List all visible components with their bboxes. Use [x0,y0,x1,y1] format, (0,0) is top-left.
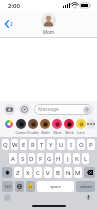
staticText: H [56,155,61,163]
button[interactable]: K [73,153,80,164]
button[interactable]: Photos [2,119,15,130]
staticText: K [75,155,79,163]
staticText: B [56,169,60,177]
staticText: E [22,141,26,149]
button[interactable]: Lore [75,119,87,135]
staticText: I [70,141,73,149]
staticText: Math [41,130,50,135]
staticText: U [59,141,64,149]
staticText: M [75,169,81,177]
button[interactable]: T [38,139,45,150]
button[interactable]: H [55,153,62,164]
staticText: D [29,155,34,163]
button[interactable]: 123 [2,181,13,192]
button[interactable]: Back [2,16,16,32]
button[interactable]: Switch keyboard [15,181,24,192]
button[interactable]: U [57,139,65,150]
staticText: W [12,141,18,149]
button[interactable]: E [20,139,27,150]
button[interactable]: Dictation [85,194,92,201]
button[interactable]: Send audio [83,106,91,114]
button[interactable]: X [24,167,32,178]
button[interactable]: F [37,153,44,164]
button[interactable]: return [76,181,95,192]
staticText: 2:00 [8,2,20,10]
staticText: Message [38,106,59,113]
staticText: J [67,155,69,163]
button[interactable]: I [67,139,75,150]
button[interactable]: S [19,153,26,164]
button[interactable]: Message [34,104,93,115]
staticText: O [79,141,84,149]
button[interactable]: W [11,139,18,150]
button[interactable]: Q [2,139,9,150]
button[interactable]: L [82,153,89,164]
staticText: G [47,155,52,163]
staticText: Y [49,141,53,149]
button[interactable]: Emoji [26,181,35,192]
button[interactable]: P [87,139,95,150]
staticText: space [50,184,61,189]
staticText: Double [27,130,39,135]
button[interactable]: Double [27,119,39,135]
button[interactable]: N [64,167,72,178]
staticText: R [31,141,35,149]
button[interactable]: Backspace [84,167,95,178]
button[interactable]: R [29,139,36,150]
button[interactable]: O [77,139,85,150]
staticText: V [46,169,50,177]
staticText: Mom [43,29,55,35]
button[interactable]: Math [39,119,51,135]
staticText: X [26,169,30,177]
button[interactable]: Shift [2,167,12,178]
button[interactable]: Camera [4,104,15,115]
button[interactable]: G [46,153,53,164]
staticText: return [80,184,92,189]
button[interactable]: space [37,181,74,192]
button[interactable]: D [28,153,35,164]
staticText: Work [65,130,74,135]
staticText: Lore [77,130,85,135]
button[interactable]: Apps [19,104,30,115]
staticText: T [40,141,44,149]
other: Photos [4,119,14,129]
staticText: P [89,141,93,149]
staticText: Most [53,130,62,135]
staticText: Q [3,141,8,149]
button[interactable]: Most [51,119,63,135]
button[interactable]: A [9,153,17,164]
button[interactable]: J [64,153,71,164]
staticText: Camera [15,130,27,135]
button[interactable]: C [34,167,42,178]
button[interactable]: B [54,167,62,178]
button[interactable]: Work [63,119,75,135]
button[interactable]: V [44,167,52,178]
staticText: F [39,155,43,163]
staticText: L [84,155,88,163]
button[interactable]: Keyboard settings [4,194,11,201]
button[interactable]: More [87,119,95,129]
staticText: S [21,155,25,163]
staticText: 123 [4,184,11,189]
staticText: N [66,169,71,177]
staticText: 2 [10,21,13,28]
button[interactable]: Z [14,167,22,178]
button[interactable]: Camera [15,119,27,135]
staticText: Z [16,169,20,177]
button[interactable]: M [74,167,82,178]
staticText: A [11,155,15,163]
button[interactable]: Mom [41,13,56,35]
staticText: C [36,169,40,177]
button[interactable]: Y [47,139,55,150]
